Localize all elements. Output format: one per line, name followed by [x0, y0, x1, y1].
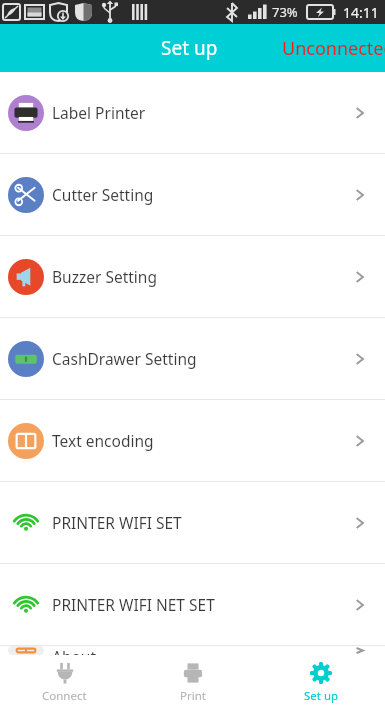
staticText: Set up: [304, 688, 339, 704]
button[interactable]: Connect: [0, 655, 129, 709]
staticText: Set up: [161, 35, 218, 61]
staticText: Print: [180, 688, 206, 704]
button[interactable]: Set up: [257, 655, 385, 709]
staticText: Connect: [42, 688, 87, 704]
button[interactable]: Buzzer Setting: [0, 236, 385, 317]
staticText: PRINTER WIFI SET: [52, 512, 351, 533]
button[interactable]: About: [0, 646, 385, 655]
button[interactable]: PRINTER WIFI SET: [0, 482, 385, 563]
button[interactable]: PRINTER WIFI NET SET: [0, 564, 385, 645]
staticText: Cutter Setting: [52, 184, 351, 205]
staticText: Text encoding: [52, 430, 351, 451]
button[interactable]: Cutter Setting: [0, 154, 385, 235]
button[interactable]: CashDrawer Setting: [0, 318, 385, 399]
staticText: Label Printer: [52, 102, 351, 123]
staticText: Unconnected: [282, 36, 385, 61]
staticText: 14:11: [343, 3, 379, 22]
staticText: Buzzer Setting: [52, 266, 351, 287]
staticText: About: [52, 646, 351, 655]
staticText: CashDrawer Setting: [52, 348, 351, 369]
staticText: PRINTER WIFI NET SET: [52, 594, 351, 615]
button[interactable]: Text encoding: [0, 400, 385, 481]
button[interactable]: Label Printer: [0, 72, 385, 153]
button[interactable]: Print: [129, 655, 257, 709]
staticText: 73%: [272, 3, 298, 21]
